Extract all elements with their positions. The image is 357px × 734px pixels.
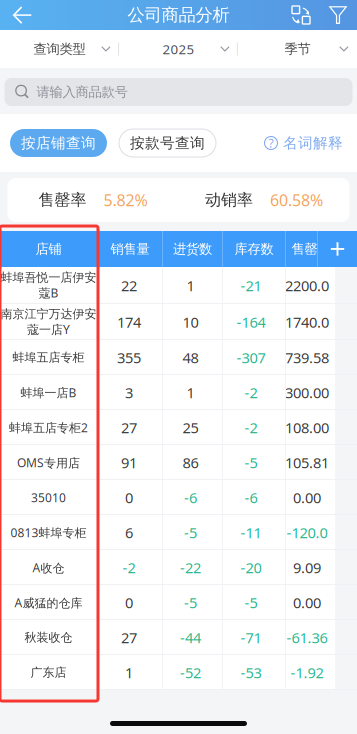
staticText: 0.00	[293, 593, 321, 612]
staticText: 2025	[162, 40, 194, 58]
staticText: 91	[121, 453, 137, 472]
staticText: 蔻B	[38, 285, 58, 301]
staticText: 按店铺查询	[21, 134, 96, 152]
staticText: -2	[122, 558, 135, 577]
staticText: 蔻一店Y	[27, 321, 70, 337]
staticText: ?	[268, 135, 273, 151]
staticText: -2	[244, 383, 257, 402]
staticText: 公司商品分析	[127, 4, 229, 26]
staticText: 108.00	[285, 418, 329, 437]
staticText: -61.36	[286, 628, 327, 647]
staticText: 1	[125, 663, 133, 682]
staticText: -20	[240, 558, 261, 577]
button[interactable]: Filter	[319, 0, 357, 30]
staticText: -5	[244, 453, 257, 472]
staticText: -21	[240, 276, 261, 295]
staticText: 销售量	[110, 241, 149, 257]
staticText: -44	[180, 628, 201, 647]
staticText: 86	[182, 453, 198, 472]
staticText: 0	[125, 593, 133, 612]
staticText: 秋装收仓	[24, 630, 72, 645]
staticText: 0.00	[293, 488, 321, 507]
staticText: 1	[186, 383, 194, 402]
staticText: 请输入商品款号	[36, 84, 127, 100]
staticText: 售罄率	[38, 190, 86, 210]
staticText: 355	[117, 348, 141, 367]
staticText: 2200.0	[285, 276, 329, 295]
staticText: 105.81	[285, 453, 329, 472]
staticText: 5.82%	[103, 189, 147, 211]
staticText: 60.58%	[270, 189, 323, 211]
staticText: 1	[186, 276, 194, 295]
staticText: -71	[240, 628, 261, 647]
staticText: -22	[180, 558, 201, 577]
staticText: A威猛的仓库	[14, 594, 82, 610]
staticText: 27	[121, 418, 137, 437]
staticText: 300.00	[285, 383, 329, 402]
staticText: 进货数	[173, 241, 212, 257]
staticText: 南京江宁万达伊安	[0, 307, 96, 321]
button[interactable]: 季节	[238, 30, 357, 68]
staticText: 22	[121, 276, 137, 295]
staticText: -164	[236, 312, 265, 332]
button[interactable]: Scan	[283, 0, 319, 30]
button[interactable]: Add column	[317, 231, 357, 267]
button[interactable]: 按店铺查询	[10, 129, 107, 157]
staticText: 35010	[31, 489, 66, 505]
button[interactable]: ?	[264, 129, 343, 157]
staticText: 库存数	[234, 241, 273, 257]
staticText: -6	[244, 488, 257, 507]
button[interactable]: Back	[0, 0, 44, 30]
staticText: -6	[184, 488, 197, 507]
staticText: -5	[184, 523, 197, 542]
staticText: -5	[244, 593, 257, 612]
staticText: 按款号查询	[130, 134, 205, 152]
staticText: OMS专用店	[17, 454, 80, 470]
button[interactable]: 查询类型	[0, 30, 119, 68]
button[interactable]: 按款号查询	[119, 129, 216, 157]
staticText: -11	[240, 523, 261, 542]
staticText: 季节	[284, 41, 310, 57]
staticText: 48	[182, 348, 198, 367]
staticText: 蚌埠五店专柜2	[9, 419, 88, 435]
staticText: -1.92	[290, 663, 323, 682]
staticText: -5	[184, 593, 197, 612]
staticText: 3	[125, 383, 133, 402]
staticText: 售罄率	[291, 241, 330, 257]
button[interactable]: 2025	[119, 30, 238, 68]
staticText: -120.0	[286, 523, 327, 542]
staticText: 10	[182, 312, 198, 332]
staticText: A收仓	[32, 559, 64, 575]
staticText: 6	[125, 523, 133, 542]
staticText: 27	[121, 628, 137, 647]
button[interactable]: 请输入商品款号	[4, 78, 352, 106]
staticText: 25	[182, 418, 198, 437]
staticText: 174	[117, 312, 141, 332]
staticText: 739.58	[285, 348, 329, 367]
staticText: -307	[236, 348, 265, 367]
staticText: 蚌埠吾悦一店伊安	[0, 270, 96, 285]
staticText: 查询类型	[33, 41, 85, 57]
staticText: 0813蚌埠专柜	[10, 524, 86, 540]
staticText: 名词解释	[283, 134, 343, 152]
staticText: -53	[240, 663, 261, 682]
staticText: 蚌埠一店B	[20, 384, 76, 400]
staticText: 0	[125, 488, 133, 507]
staticText: 广东店	[30, 665, 66, 680]
staticText: 蚌埠五店专柜	[12, 350, 84, 365]
staticText: 9.09	[293, 558, 321, 577]
staticText: -52	[180, 663, 201, 682]
staticText: 店铺	[35, 241, 61, 257]
staticText: 1740.0	[285, 312, 329, 332]
staticText: 动销率	[205, 190, 253, 210]
staticText: -2	[244, 418, 257, 437]
